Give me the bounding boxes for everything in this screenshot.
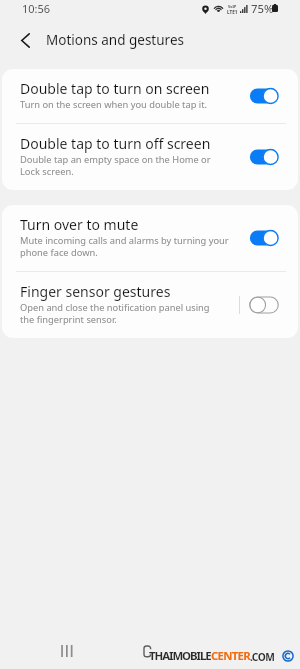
staticText: Mute incoming calls and alarms by turnin… (20, 234, 229, 258)
button[interactable]: Switch off (249, 296, 279, 314)
staticText: .COM (250, 650, 275, 664)
staticText: Finger sensor gestures (20, 284, 171, 300)
staticText: Turn over to mute (20, 217, 139, 233)
button[interactable]: Finger sensor gestures (2, 272, 298, 338)
button[interactable]: Switch on (249, 87, 279, 105)
staticText: Double tap to turn on screen (20, 81, 210, 97)
button[interactable]: Switch on (249, 148, 279, 166)
staticText: Double tap an empty space on the Home or… (20, 153, 211, 177)
staticText: Open and close the notification panel us… (20, 301, 210, 325)
staticText: Turn on the screen when you double tap i… (20, 98, 208, 110)
button[interactable]: Navigate up (12, 27, 38, 53)
staticText: 10:56 (22, 1, 51, 16)
button[interactable]: Double tap to turn on screen (2, 69, 298, 123)
button[interactable]: Turn over to mute (2, 205, 298, 271)
button[interactable]: Double tap to turn off screen (2, 124, 298, 190)
staticText: VoIP (228, 4, 237, 9)
button[interactable]: Recent apps (54, 641, 80, 661)
staticText: Motions and gestures (46, 31, 184, 49)
staticText: LTE1 (227, 9, 238, 15)
staticText: CENTER (211, 648, 250, 664)
staticText: 75% (251, 1, 274, 16)
button[interactable]: Switch on (249, 229, 279, 247)
staticText: THAIMOBILE (149, 648, 211, 664)
staticText: Double tap to turn off screen (20, 136, 211, 152)
